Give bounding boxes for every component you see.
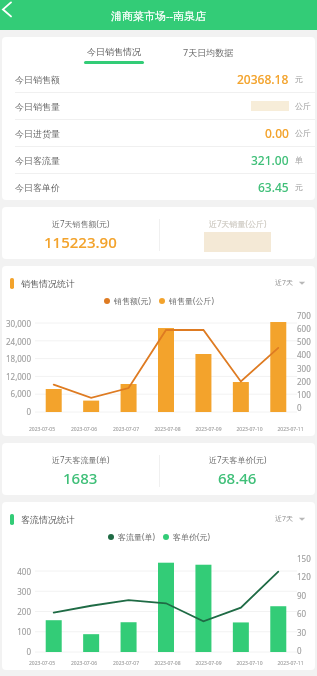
staticText: 近7天 <box>275 278 294 288</box>
staticText: 12,000 <box>2 371 31 382</box>
staticText: 近7天销量(公斤) <box>209 218 267 229</box>
staticText: 30 <box>297 627 315 638</box>
staticText: 浦商菜市场--南泉店 <box>111 8 207 23</box>
button[interactable]: 今日客流量 <box>2 147 315 174</box>
staticText: 300 <box>297 363 315 374</box>
staticText: 今日客单价 <box>15 182 60 193</box>
staticText: 100 <box>2 626 31 637</box>
staticText: 销售额(元) <box>114 295 151 306</box>
staticText: 近7天 <box>275 514 294 524</box>
staticText: 2023-07-08 <box>147 426 188 433</box>
staticText: 2023-07-07 <box>105 660 147 667</box>
staticText: 500 <box>297 336 315 347</box>
staticText: 20368.18 <box>237 71 289 87</box>
button[interactable]: 今日销售量 <box>2 93 315 120</box>
staticText: 近7天销售额(元) <box>52 218 110 229</box>
staticText: 今日销售情况 <box>87 46 141 57</box>
staticText: 2023-07-05 <box>21 660 63 667</box>
button[interactable]: 近7天客单价(元) <box>160 454 315 488</box>
staticText: 30,000 <box>2 318 31 329</box>
staticText: 90 <box>297 590 315 601</box>
staticText: 2023-07-09 <box>188 426 229 433</box>
staticText: 0 <box>2 406 31 417</box>
staticText: 今日销售量 <box>15 101 60 112</box>
button[interactable]: 今日进货量 <box>2 120 315 147</box>
staticText: 1683 <box>63 468 98 488</box>
staticText: 600 <box>297 323 315 334</box>
staticText: 200 <box>2 606 31 617</box>
staticText: 321.00 <box>251 152 289 168</box>
staticText: 单 <box>295 155 303 165</box>
staticText: 400 <box>297 349 315 360</box>
staticText: 0 <box>2 646 31 657</box>
staticText: 18,000 <box>2 353 31 364</box>
staticText: 400 <box>2 566 31 577</box>
button[interactable]: 今日客单价 <box>2 174 315 200</box>
staticText: 今日客流量 <box>15 155 60 166</box>
staticText: 客单价(元) <box>173 531 210 542</box>
staticText: 今日进货量 <box>15 128 60 139</box>
staticText: 元 <box>295 74 303 84</box>
staticText: 7天日均数据 <box>183 46 234 58</box>
staticText: 100 <box>297 389 315 400</box>
button[interactable]: 今日销售情况 <box>76 37 152 64</box>
staticText: 60 <box>297 608 315 619</box>
staticText: 公斤 <box>295 101 311 111</box>
staticText: 6,000 <box>2 388 31 399</box>
staticText: 客流情况统计 <box>21 514 75 525</box>
button[interactable]: 近7天客流量(单) <box>2 454 159 488</box>
button[interactable]: 7天日均数据 <box>175 37 242 65</box>
staticText: 24,000 <box>2 336 31 347</box>
staticText: 115223.90 <box>44 232 117 252</box>
staticText: 700 <box>297 310 315 321</box>
staticText: 客流量(单) <box>118 531 155 542</box>
staticText: 68.46 <box>218 468 257 488</box>
staticText: 2023-07-08 <box>147 660 188 667</box>
staticText: 公斤 <box>295 128 311 138</box>
staticText: 今日销售额 <box>15 74 60 85</box>
staticText: 120 <box>297 571 315 582</box>
staticText: 销售量(公斤) <box>169 295 214 306</box>
staticText: 150 <box>297 553 315 564</box>
staticText: 2023-07-11 <box>270 426 311 433</box>
staticText: 2023-07-09 <box>188 660 229 667</box>
staticText: 63.45 <box>258 179 289 195</box>
staticText: 近7天客单价(元) <box>209 454 267 465</box>
staticText: 2023-07-10 <box>229 426 270 433</box>
staticText: 0.00 <box>265 125 289 141</box>
staticText: 近7天客流量(单) <box>52 454 110 465</box>
button[interactable]: 近7天销量(公斤) <box>160 218 315 252</box>
button[interactable]: Back <box>0 0 26 26</box>
staticText: 0 <box>297 402 315 413</box>
staticText: 2023-07-11 <box>270 660 311 667</box>
staticText: 300 <box>2 586 31 597</box>
staticText: 2023-07-10 <box>229 660 270 667</box>
staticText: 2023-07-05 <box>21 426 63 433</box>
staticText: 2023-07-06 <box>63 660 105 667</box>
button[interactable]: 近7天 <box>275 278 306 288</box>
button[interactable]: 今日销售额 <box>2 66 315 93</box>
button[interactable]: 近7天销售额(元) <box>2 218 159 252</box>
staticText: 0 <box>297 645 315 656</box>
button[interactable]: 近7天 <box>275 514 306 524</box>
staticText: 2023-07-06 <box>63 426 105 433</box>
staticText: 元 <box>295 182 303 192</box>
staticText: 销售情况统计 <box>21 278 75 289</box>
staticText: 2023-07-07 <box>105 426 147 433</box>
staticText: 200 <box>297 376 315 387</box>
